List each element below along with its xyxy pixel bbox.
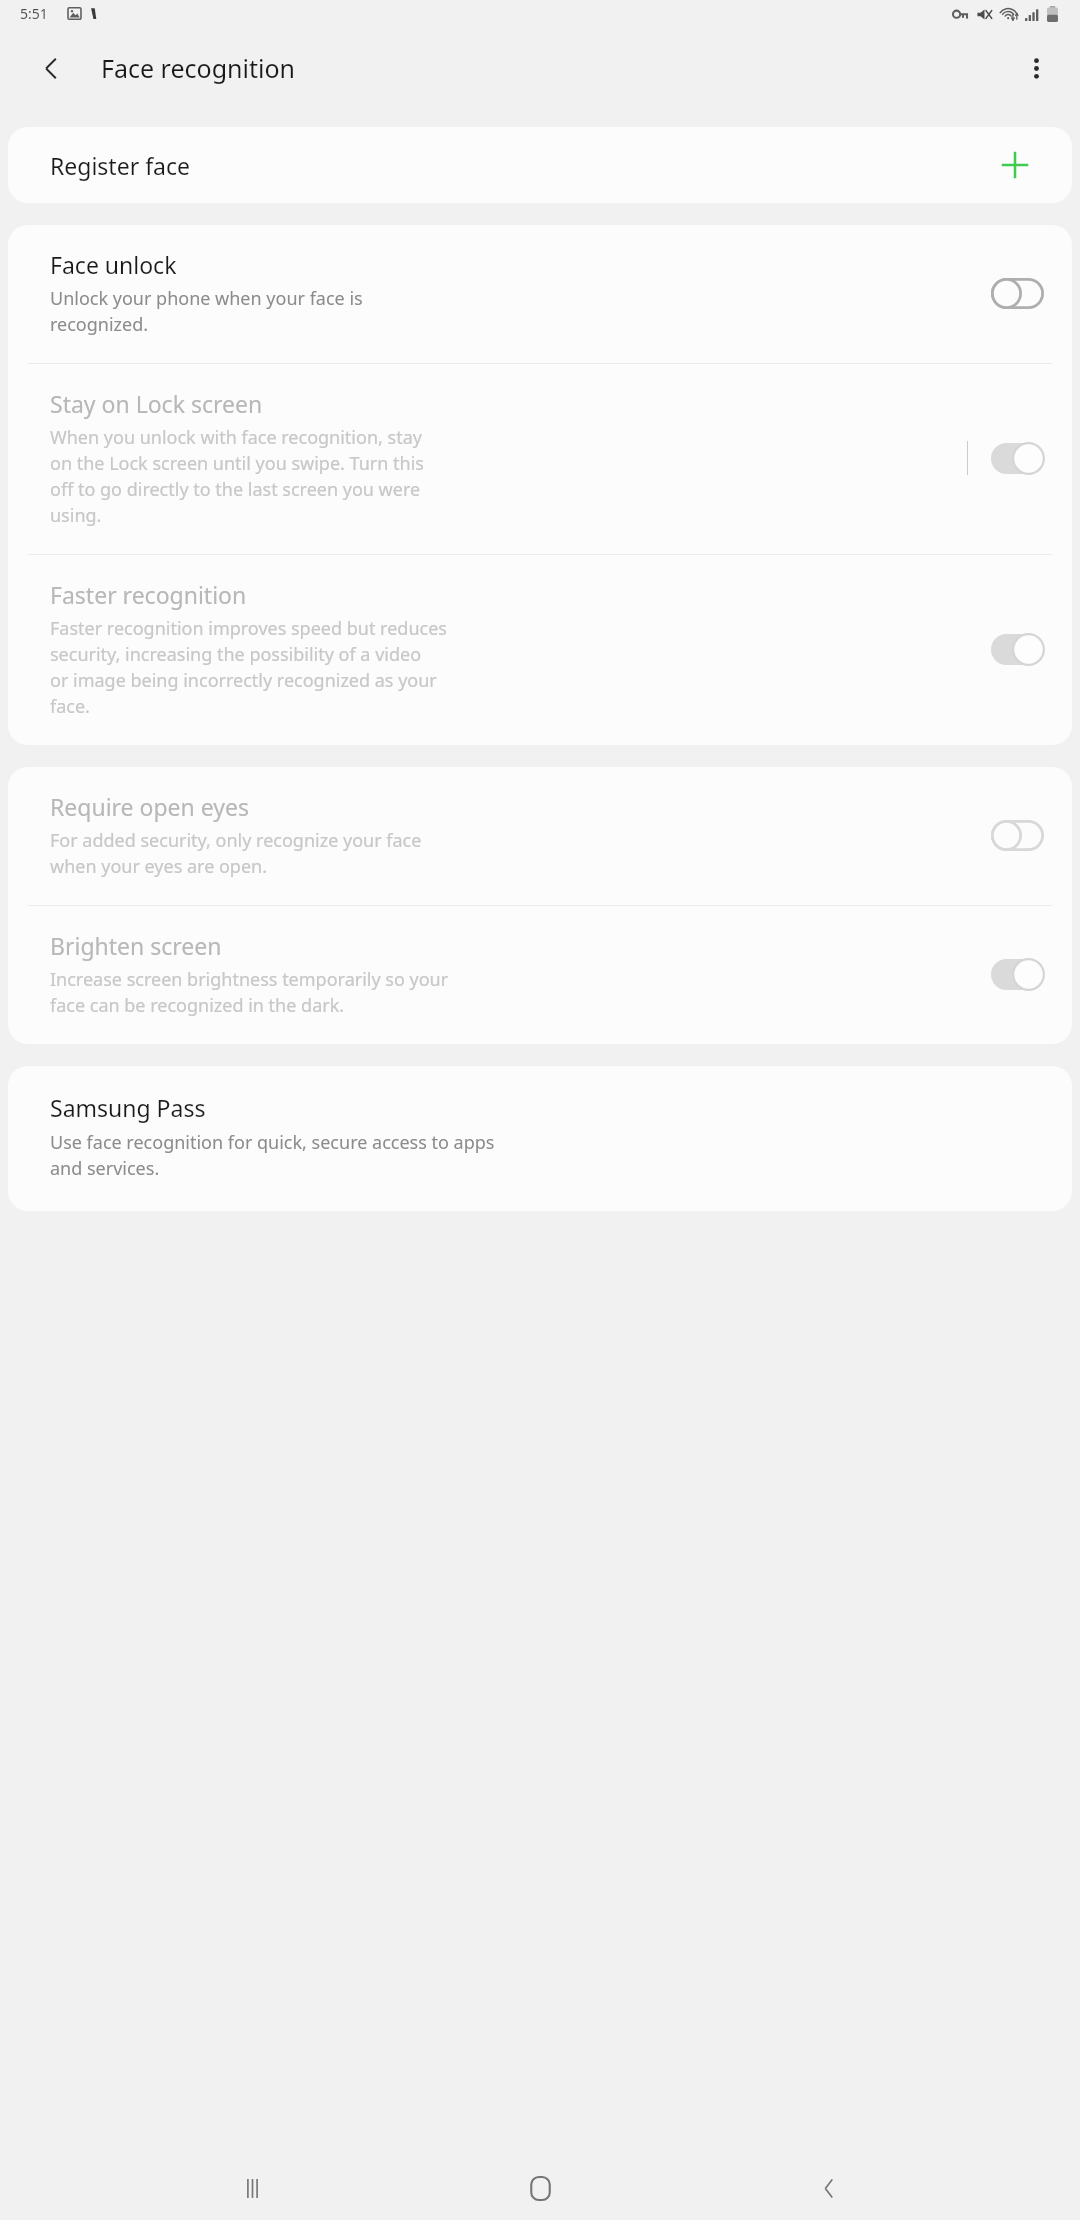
- staticText: Require open eyes: [50, 791, 250, 822]
- staticText: Face recognition: [101, 51, 295, 85]
- button[interactable]: Register face: [8, 127, 1072, 203]
- button[interactable]: Off: [991, 278, 1044, 309]
- button[interactable]: Samsung Pass: [8, 1066, 1072, 1211]
- staticText: 5:51: [20, 4, 48, 23]
- staticText: Faster recognition improves speed but re…: [50, 616, 447, 719]
- button[interactable]: Require open eyes: [8, 767, 1072, 905]
- button[interactable]: Back: [792, 2156, 866, 2220]
- button[interactable]: On: [991, 959, 1044, 990]
- button[interactable]: On: [991, 634, 1044, 665]
- button[interactable]: Brighten screen: [8, 906, 1072, 1044]
- button[interactable]: Stay on Lock screen: [8, 364, 1072, 554]
- button[interactable]: Off: [991, 820, 1044, 851]
- button[interactable]: More options: [1009, 41, 1063, 95]
- staticText: Face unlock: [50, 249, 177, 280]
- staticText: For added security, only recognize your …: [50, 828, 422, 879]
- staticText: Use face recognition for quick, secure a…: [50, 1130, 495, 1181]
- staticText: Register face: [50, 150, 1000, 181]
- staticText: Increase screen brightness temporarily s…: [50, 967, 449, 1018]
- button[interactable]: Navigate up: [24, 41, 78, 95]
- button[interactable]: Recents: [215, 2156, 289, 2220]
- staticText: Brighten screen: [50, 930, 222, 961]
- staticText: When you unlock with face recognition, s…: [50, 425, 424, 528]
- staticText: Stay on Lock screen: [50, 388, 263, 419]
- staticText: Unlock your phone when your face is reco…: [50, 286, 363, 337]
- button[interactable]: Face unlock: [8, 225, 1072, 363]
- staticText: Faster recognition: [50, 579, 247, 610]
- button[interactable]: On: [991, 443, 1044, 474]
- staticText: Samsung Pass: [50, 1092, 206, 1123]
- button[interactable]: Home: [503, 2156, 577, 2220]
- button[interactable]: Faster recognition: [8, 555, 1072, 745]
